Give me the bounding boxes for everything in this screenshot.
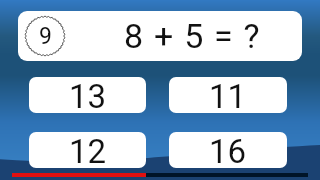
staticText: 11 bbox=[209, 77, 247, 113]
button[interactable]: 13 bbox=[29, 77, 146, 113]
staticText: 16 bbox=[209, 132, 247, 168]
staticText: 13 bbox=[69, 77, 107, 113]
button[interactable]: 12 bbox=[29, 132, 146, 168]
staticText: 12 bbox=[69, 132, 107, 168]
staticText: 9 bbox=[39, 23, 52, 50]
button[interactable]: 11 bbox=[169, 77, 287, 113]
staticText: 8 + 5 = ? bbox=[124, 16, 261, 56]
button[interactable]: 16 bbox=[169, 132, 287, 168]
other: Question 9 bbox=[24, 15, 66, 57]
